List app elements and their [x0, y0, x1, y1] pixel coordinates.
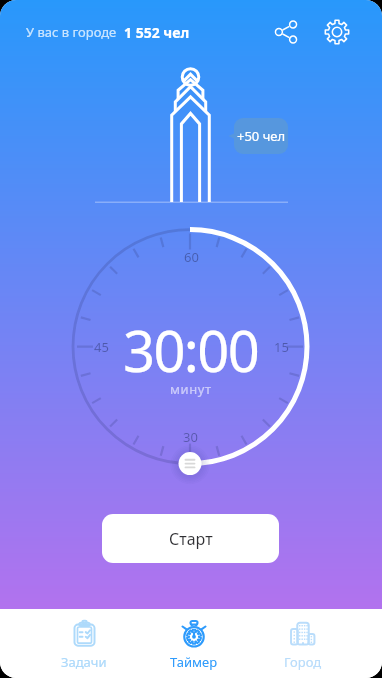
staticText: Старт: [169, 528, 213, 550]
staticText: У вас в городе: [26, 23, 117, 41]
button[interactable]: Старт: [102, 514, 279, 563]
button[interactable]: +50 чел: [226, 118, 288, 154]
staticText: Таймер: [170, 653, 218, 671]
button[interactable]: Таймер: [139, 609, 248, 678]
button[interactable]: Город: [248, 609, 357, 678]
staticText: минут: [170, 380, 212, 398]
staticText: Задачи: [61, 653, 107, 671]
button[interactable]: Задачи: [29, 609, 139, 678]
staticText: 60: [184, 248, 199, 266]
staticText: 30: [183, 428, 198, 446]
button[interactable]: Share: [269, 15, 303, 49]
staticText: +50 чел: [237, 127, 286, 145]
staticText: 45: [94, 338, 109, 356]
staticText: 30:00: [123, 312, 259, 388]
button[interactable]: Settings: [320, 15, 354, 49]
staticText: 15: [274, 338, 289, 356]
staticText: 1 552 чел: [124, 23, 190, 42]
staticText: Город: [284, 653, 322, 671]
